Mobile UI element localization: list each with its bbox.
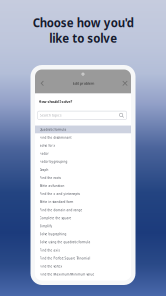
button[interactable]: Solve by graphing (35, 230, 131, 238)
button[interactable]: Close (120, 79, 129, 88)
staticText: Complete the square (39, 216, 71, 220)
staticText: Simplify (39, 224, 51, 228)
button[interactable]: Find the vertex (35, 262, 131, 270)
staticText: Factor by grouping (39, 160, 67, 164)
staticText: Write as function (39, 184, 64, 188)
staticText: Quadratic formula (39, 127, 66, 131)
staticText: Find the vertex (39, 264, 62, 268)
staticText: Find the axis (39, 248, 59, 252)
staticText: Solve for x (39, 144, 55, 148)
staticText: Find the discriminant (39, 136, 71, 140)
button[interactable]: Find the Maximum/Minimum value (35, 270, 131, 278)
staticText: Solve by graphing (39, 232, 66, 236)
button[interactable]: Simplify (35, 222, 131, 230)
staticText: Write in standard form (39, 200, 73, 204)
staticText: Find the roots (39, 176, 60, 180)
staticText: Find the domain and range (39, 208, 82, 212)
button[interactable]: Complete the square (35, 214, 131, 222)
staticText: Choose how you'd like to solve (32, 15, 133, 46)
button[interactable]: Graph (35, 166, 131, 174)
staticText: Solve using the quadratic formula (39, 240, 90, 244)
button[interactable]: Factor (35, 150, 131, 158)
button[interactable]: Find the discriminant (35, 134, 131, 142)
button[interactable]: Factor by grouping (35, 158, 131, 166)
staticText: Find the Maximum/Minimum value (39, 272, 94, 276)
staticText: Search topics (40, 113, 62, 117)
button[interactable]: Find the x and y intercepts (35, 190, 131, 198)
button[interactable]: Find the Perfect Square Trinomial (35, 254, 131, 262)
staticText: Find the x and y intercepts (39, 192, 79, 196)
button[interactable]: Find the roots (35, 174, 131, 182)
button[interactable]: Quadratic formula (35, 125, 131, 134)
staticText: Find the Perfect Square Trinomial (39, 256, 90, 260)
button[interactable]: Solve for x (35, 142, 131, 150)
staticText: Edit problem (73, 81, 95, 86)
button[interactable]: Find the domain and range (35, 206, 131, 214)
staticText: How should I solve? (38, 99, 72, 104)
button[interactable]: Solve using the quadratic formula (35, 238, 131, 246)
staticText: Factor (39, 152, 48, 156)
button[interactable]: Write in standard form (35, 198, 131, 206)
button[interactable]: Find the axis (35, 246, 131, 254)
button[interactable]: Write as function (35, 182, 131, 190)
button[interactable]: Back (38, 79, 47, 88)
staticText: Graph (39, 168, 48, 172)
